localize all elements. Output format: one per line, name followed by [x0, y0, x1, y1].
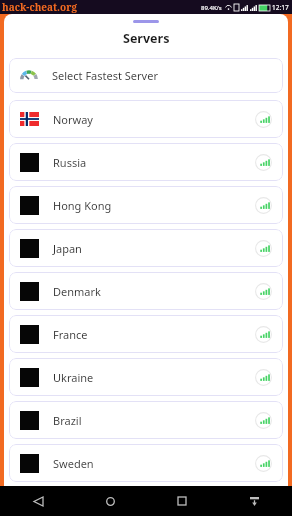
staticText: Sweden: [53, 456, 94, 471]
staticText: 12:17: [272, 3, 289, 12]
button[interactable]: France: [9, 315, 283, 353]
button[interactable]: Japan: [9, 229, 283, 267]
button[interactable]: Ukraine: [9, 358, 283, 396]
button[interactable]: Recent apps: [170, 489, 194, 513]
button[interactable]: Sweden: [9, 444, 283, 482]
staticText: France: [53, 327, 88, 342]
staticText: Brazil: [53, 413, 82, 428]
staticText: Hong Kong: [53, 198, 112, 213]
staticText: hack-cheat.org: [2, 0, 78, 14]
staticText: Ukraine: [53, 370, 94, 385]
staticText: Norway: [53, 112, 93, 127]
button[interactable]: Back: [26, 489, 50, 513]
button[interactable]: Russia: [9, 143, 283, 181]
button[interactable]: Hide navigation bar: [242, 489, 266, 513]
staticText: Japan: [53, 241, 82, 256]
button[interactable]: Denmark: [9, 272, 283, 310]
button[interactable]: Home: [98, 489, 122, 513]
staticText: Denmark: [53, 284, 101, 299]
button[interactable]: Brazil: [9, 401, 283, 439]
button[interactable]: Select Fastest Server: [9, 58, 283, 93]
staticText: Servers: [123, 30, 170, 47]
button[interactable]: Norway: [9, 100, 283, 138]
staticText: Select Fastest Server: [52, 68, 158, 83]
staticText: Russia: [53, 155, 87, 170]
button[interactable]: Hong Kong: [9, 186, 283, 224]
staticText: 89.4K/s: [201, 4, 222, 12]
